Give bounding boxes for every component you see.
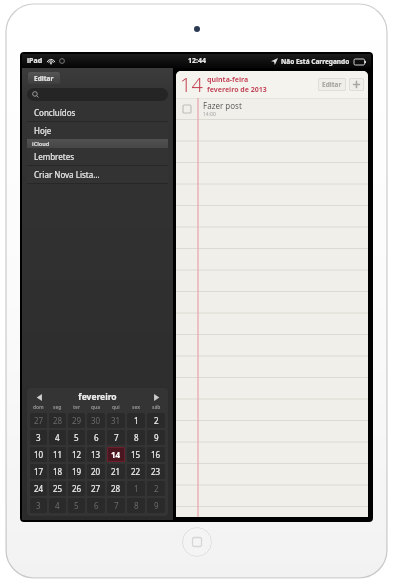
- staticText: 29: [72, 415, 82, 426]
- staticText: quinta-feira: [207, 75, 249, 85]
- button[interactable]: 23: [147, 464, 165, 479]
- staticText: 22: [131, 466, 141, 477]
- button[interactable]: 9: [147, 430, 165, 445]
- staticText: qui: [112, 404, 120, 411]
- button[interactable]: 8: [127, 430, 145, 445]
- button[interactable]: 2: [147, 481, 165, 496]
- button[interactable]: 14: [107, 447, 125, 462]
- button[interactable]: 4: [49, 430, 66, 445]
- button[interactable]: 16: [147, 447, 165, 462]
- staticText: 14: [180, 71, 203, 98]
- button[interactable]: 28: [107, 481, 125, 496]
- staticText: 20: [91, 466, 101, 477]
- staticText: 8: [134, 432, 139, 443]
- staticText: sex: [132, 404, 140, 411]
- staticText: 7: [114, 432, 119, 443]
- staticText: Lembretes: [34, 151, 74, 162]
- staticText: Editar: [322, 80, 342, 89]
- staticText: qua: [91, 404, 101, 411]
- button[interactable]: 5: [68, 430, 85, 445]
- staticText: iCloud: [32, 140, 50, 147]
- button[interactable]: 2: [147, 413, 165, 428]
- button[interactable]: 6: [87, 430, 105, 445]
- staticText: 28: [53, 415, 63, 426]
- button[interactable]: 29: [68, 413, 85, 428]
- button[interactable]: 17: [30, 464, 47, 479]
- staticText: fevereiro: [45, 391, 150, 403]
- staticText: 28: [111, 483, 121, 494]
- staticText: 13: [91, 449, 101, 460]
- button[interactable]: 27: [30, 413, 47, 428]
- staticText: 3: [36, 432, 41, 443]
- button[interactable]: Lembretes: [27, 148, 168, 165]
- button[interactable]: 13: [87, 447, 105, 462]
- button[interactable]: Criar Nova Lista…: [27, 166, 168, 183]
- button[interactable]: 4: [49, 498, 66, 513]
- button[interactable]: Next month: [150, 391, 162, 403]
- staticText: 16: [151, 449, 161, 460]
- button[interactable]: 24: [30, 481, 47, 496]
- staticText: fevereiro de 2013: [207, 85, 267, 95]
- staticText: 12: [72, 449, 82, 460]
- button[interactable]: 28: [49, 413, 66, 428]
- button[interactable]: 5: [68, 498, 85, 513]
- button[interactable]: 3: [30, 430, 47, 445]
- button[interactable]: 7: [107, 430, 125, 445]
- button[interactable]: Concluídos: [27, 104, 168, 121]
- button[interactable]: 30: [87, 413, 105, 428]
- staticText: 31: [111, 415, 121, 426]
- staticText: dom: [33, 404, 44, 411]
- button[interactable]: [27, 88, 168, 101]
- button[interactable]: 9: [147, 498, 165, 513]
- button[interactable]: Editar: [28, 72, 60, 84]
- staticText: 10: [34, 449, 44, 460]
- staticText: seg: [53, 404, 62, 411]
- staticText: 14:00: [203, 111, 216, 118]
- staticText: 3: [36, 500, 41, 511]
- staticText: Não Está Carregando: [281, 57, 350, 66]
- staticText: 27: [91, 483, 101, 494]
- button[interactable]: 7: [107, 498, 125, 513]
- button[interactable]: 11: [49, 447, 66, 462]
- staticText: 26: [72, 483, 82, 494]
- staticText: 25: [53, 483, 63, 494]
- staticText: 8: [134, 500, 139, 511]
- button[interactable]: 26: [68, 481, 85, 496]
- staticText: 19: [72, 466, 82, 477]
- button[interactable]: 18: [49, 464, 66, 479]
- button[interactable]: Hoje: [27, 122, 168, 139]
- staticText: Editar: [34, 74, 54, 83]
- staticText: 24: [34, 483, 44, 494]
- button[interactable]: 31: [107, 413, 125, 428]
- staticText: 1: [134, 415, 139, 426]
- staticText: 9: [154, 432, 159, 443]
- button[interactable]: 21: [107, 464, 125, 479]
- button[interactable]: Previous month: [33, 391, 45, 403]
- button[interactable]: 12: [68, 447, 85, 462]
- staticText: Criar Nova Lista…: [34, 169, 100, 180]
- button[interactable]: Editar: [318, 78, 346, 91]
- button[interactable]: 3: [30, 498, 47, 513]
- staticText: 27: [34, 415, 44, 426]
- staticText: Fazer post: [203, 100, 242, 111]
- button[interactable]: 22: [127, 464, 145, 479]
- button[interactable]: 6: [87, 498, 105, 513]
- staticText: 5: [74, 500, 79, 511]
- button[interactable]: 1: [127, 413, 145, 428]
- staticText: 2: [154, 483, 159, 494]
- button[interactable]: 8: [127, 498, 145, 513]
- button[interactable]: Add reminder: [349, 78, 364, 91]
- button[interactable]: 19: [68, 464, 85, 479]
- button[interactable]: Home: [182, 527, 212, 557]
- button[interactable]: 15: [127, 447, 145, 462]
- button[interactable]: Fazer post: [176, 98, 368, 120]
- button[interactable]: 27: [87, 481, 105, 496]
- staticText: 4: [55, 500, 60, 511]
- button[interactable]: 25: [49, 481, 66, 496]
- button[interactable]: 1: [127, 481, 145, 496]
- staticText: 2: [154, 415, 159, 426]
- staticText: 6: [94, 500, 99, 511]
- staticText: 5: [74, 432, 79, 443]
- button[interactable]: 10: [30, 447, 47, 462]
- button[interactable]: 20: [87, 464, 105, 479]
